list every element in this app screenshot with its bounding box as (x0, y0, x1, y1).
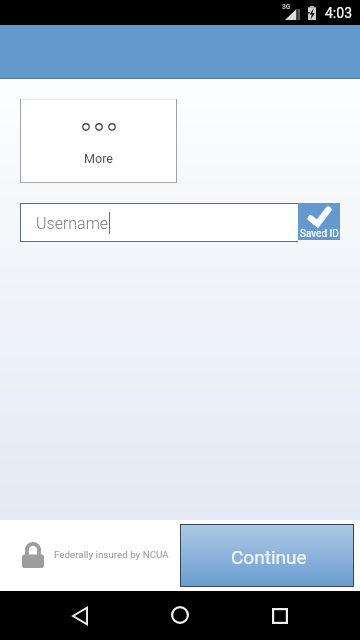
button[interactable]: Saved ID (298, 203, 340, 240)
staticText: More (84, 151, 114, 166)
button[interactable]: Recent apps (256, 592, 304, 640)
button[interactable]: Home (156, 591, 204, 639)
button[interactable]: Continue (180, 524, 354, 587)
button[interactable]: Username (20, 203, 298, 242)
staticText: Username (36, 214, 109, 233)
staticText: 4:03 (325, 5, 352, 21)
staticText: 3G (282, 3, 291, 11)
staticText: Continue (231, 546, 307, 568)
button[interactable]: Back (56, 592, 104, 640)
staticText: Saved ID (300, 228, 339, 240)
button[interactable]: More (20, 99, 177, 183)
staticText: Federally insured by NCUA (54, 549, 169, 560)
